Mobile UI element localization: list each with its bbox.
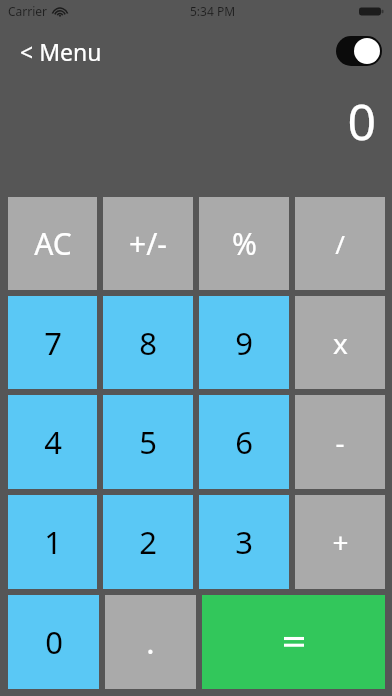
button[interactable]: -: [295, 395, 385, 489]
button[interactable]: .: [105, 595, 196, 689]
button[interactable]: Toggle: [336, 36, 382, 66]
staticText: 6: [235, 421, 253, 463]
staticText: %: [232, 223, 257, 264]
button[interactable]: +/-: [103, 197, 193, 290]
button[interactable]: AC: [8, 197, 97, 290]
button[interactable]: +: [295, 495, 385, 589]
staticText: 1: [44, 521, 62, 563]
staticText: +/-: [129, 223, 167, 264]
button[interactable]: %: [199, 197, 289, 290]
staticText: 0: [45, 621, 63, 663]
staticText: 0: [347, 87, 376, 155]
button[interactable]: 2: [103, 495, 193, 589]
button[interactable]: /: [295, 197, 385, 290]
staticText: +: [332, 523, 349, 561]
button[interactable]: 9: [199, 296, 289, 389]
staticText: 2: [139, 521, 157, 563]
button[interactable]: < Menu: [18, 32, 104, 71]
staticText: 5:34 PM: [190, 3, 236, 19]
staticText: < Menu: [20, 36, 102, 67]
staticText: 3: [235, 521, 253, 563]
button[interactable]: 0: [8, 595, 99, 689]
button[interactable]: x: [295, 296, 385, 389]
staticText: x: [333, 324, 348, 362]
button[interactable]: 7: [8, 296, 97, 389]
staticText: 5: [139, 421, 157, 463]
staticText: /: [335, 226, 345, 261]
staticText: 4: [44, 421, 62, 463]
staticText: -: [335, 423, 345, 461]
button[interactable]: Equals: [202, 595, 385, 689]
button[interactable]: 5: [103, 395, 193, 489]
staticText: 7: [44, 322, 62, 364]
staticText: .: [146, 621, 155, 663]
button[interactable]: 3: [199, 495, 289, 589]
staticText: AC: [34, 223, 72, 264]
button[interactable]: 8: [103, 296, 193, 389]
staticText: Carrier: [8, 3, 48, 19]
staticText: 9: [235, 322, 253, 364]
button[interactable]: 6: [199, 395, 289, 489]
button[interactable]: 1: [8, 495, 97, 589]
staticText: 8: [139, 322, 157, 364]
button[interactable]: 4: [8, 395, 97, 489]
